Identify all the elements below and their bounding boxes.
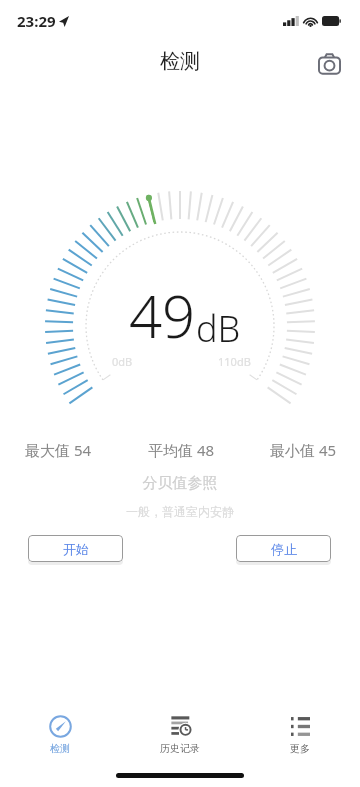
- staticText: 49: [129, 276, 196, 355]
- staticText: 最大值 54: [25, 440, 92, 460]
- button[interactable]: 开始: [28, 535, 123, 562]
- button[interactable]: 更多: [240, 715, 360, 755]
- button[interactable]: 历史记录: [120, 715, 240, 755]
- staticText: 最小值 45: [270, 440, 337, 460]
- staticText: 检测: [160, 49, 200, 74]
- button[interactable]: Camera: [309, 44, 349, 84]
- staticText: 平均值 48: [148, 440, 215, 460]
- staticText: 开始: [63, 541, 89, 557]
- staticText: 分贝值参照: [0, 474, 360, 493]
- staticText: 历史记录: [160, 742, 200, 755]
- staticText: 23:29: [17, 11, 56, 31]
- staticText: 一般，普通室内安静: [0, 504, 360, 519]
- staticText: 110dB: [218, 354, 251, 369]
- staticText: 停止: [271, 541, 297, 557]
- button[interactable]: 检测: [0, 715, 120, 755]
- staticText: 更多: [290, 742, 310, 755]
- staticText: 0dB: [112, 354, 133, 369]
- staticText: 检测: [50, 742, 70, 755]
- staticText: dB: [196, 304, 241, 353]
- button[interactable]: 停止: [236, 535, 331, 562]
